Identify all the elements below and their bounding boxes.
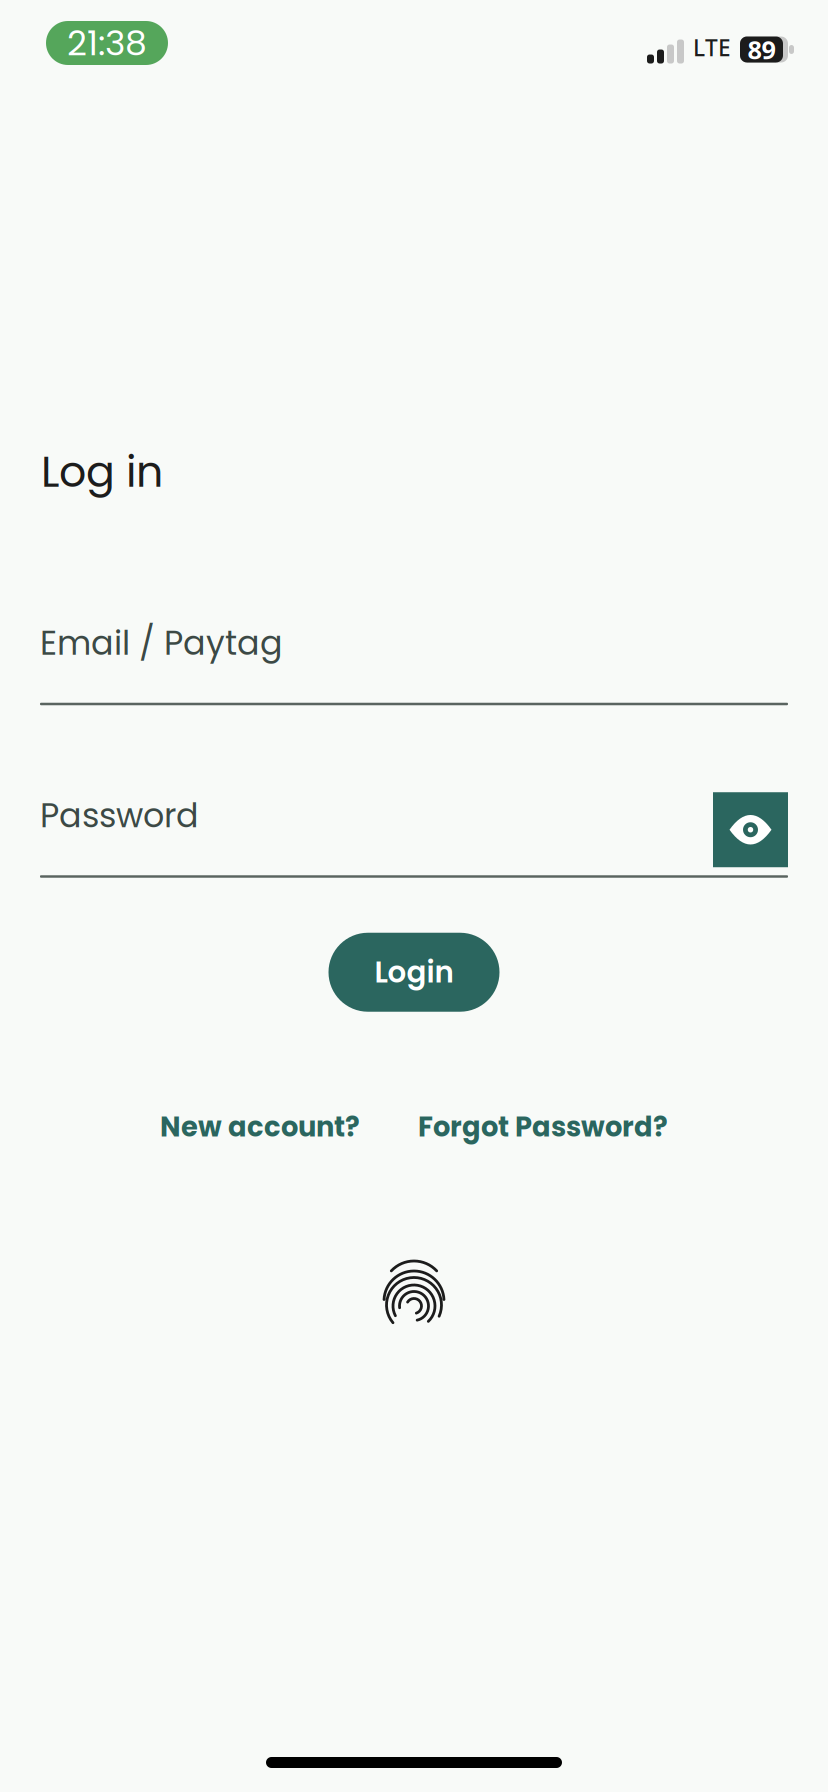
staticText: Login xyxy=(374,952,453,993)
staticText: Log in xyxy=(41,442,163,502)
staticText: LTE xyxy=(693,32,731,62)
staticText: Email / Paytag xyxy=(40,620,283,666)
staticText: 21:38 xyxy=(67,19,147,67)
button[interactable]: Login xyxy=(328,933,499,1012)
button[interactable]: New account? xyxy=(160,1108,360,1146)
staticText: Forgot Password? xyxy=(418,1108,668,1146)
button[interactable]: Forgot Password? xyxy=(418,1108,668,1146)
staticText: Password xyxy=(40,792,199,839)
button[interactable]: Show password xyxy=(713,792,788,867)
button[interactable]: Sign in with fingerprint xyxy=(384,1265,444,1333)
staticText: 89 xyxy=(747,33,775,66)
staticText: New account? xyxy=(160,1108,360,1146)
